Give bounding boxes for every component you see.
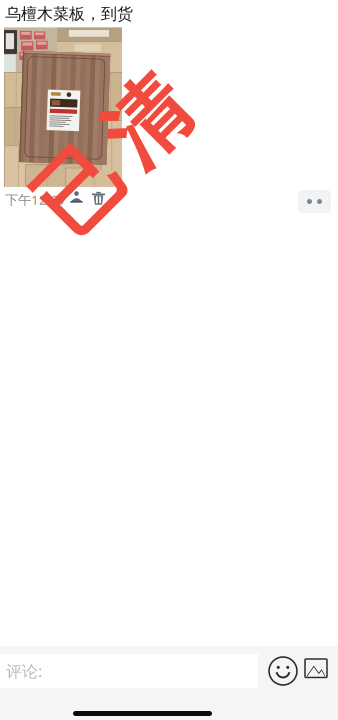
staticText: 乌檀木菜板，到货 <box>5 4 133 24</box>
staticText: 清 <box>105 71 188 173</box>
staticText: 评论: <box>6 660 42 682</box>
staticText: 下午12:07 <box>5 191 67 208</box>
staticText: 已 <box>35 139 118 241</box>
button[interactable]: More <box>298 190 331 213</box>
button[interactable]: Photo <box>305 659 327 677</box>
button[interactable]: 评论: <box>0 654 258 688</box>
button[interactable]: Visibility <box>70 191 83 203</box>
button[interactable]: Emoji <box>269 657 297 685</box>
button[interactable]: Delete <box>92 190 105 203</box>
